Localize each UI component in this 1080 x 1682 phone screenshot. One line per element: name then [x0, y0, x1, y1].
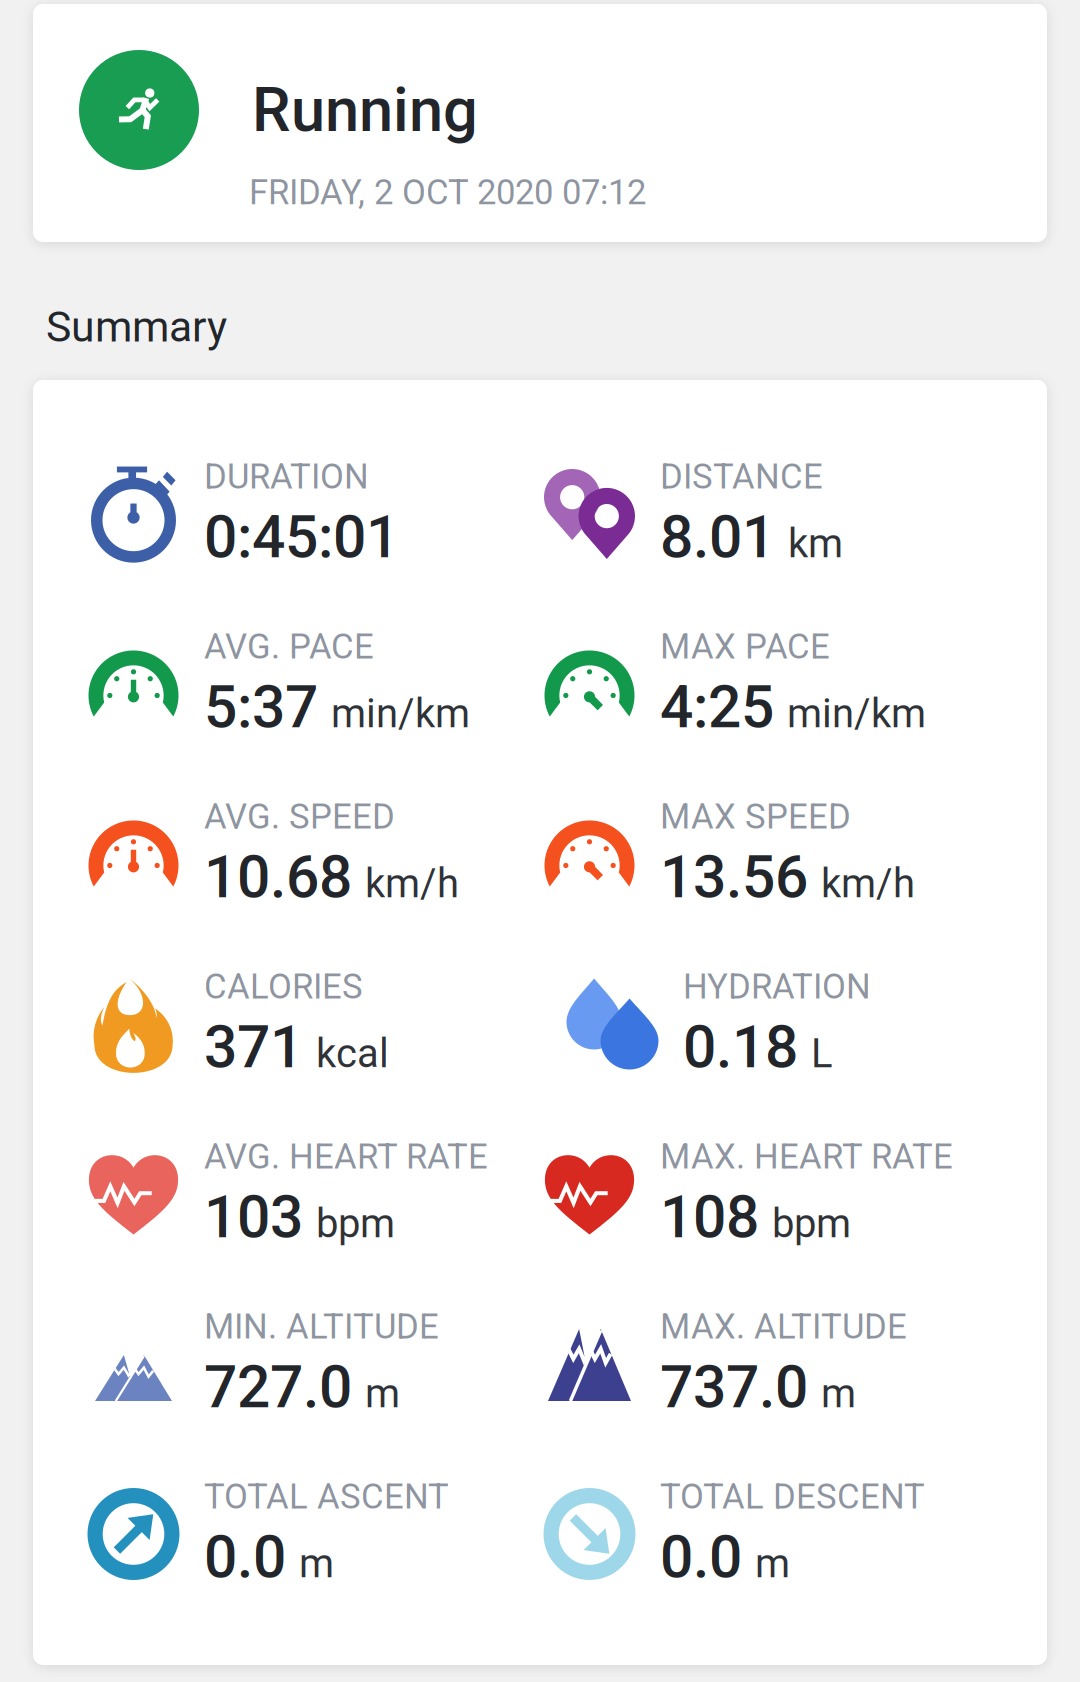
staticText: 5:37	[204, 673, 318, 742]
staticText: AVG. PACE	[204, 626, 374, 667]
staticText: 13.56	[660, 843, 808, 912]
staticText: 737.0	[660, 1353, 808, 1422]
staticText: AVG. SPEED	[204, 796, 395, 837]
staticText: TOTAL ASCENT	[204, 1476, 449, 1517]
staticText: 8.01	[660, 503, 775, 572]
staticText: km/h	[365, 860, 459, 907]
staticText: min/km	[787, 690, 926, 737]
staticText: 0.18	[683, 1013, 798, 1082]
staticText: bpm	[316, 1200, 395, 1247]
staticText: kcal	[316, 1030, 389, 1077]
staticText: 108	[660, 1183, 759, 1252]
staticText: m	[821, 1370, 856, 1417]
staticText: FRIDAY, 2 OCT 2020 07:12	[249, 172, 646, 213]
staticText: TOTAL DESCENT	[660, 1476, 925, 1517]
staticText: MAX PACE	[660, 626, 830, 667]
staticText: km/h	[821, 860, 915, 907]
staticText: m	[365, 1370, 400, 1417]
staticText: bpm	[772, 1200, 851, 1247]
staticText: DISTANCE	[660, 456, 823, 497]
staticText: 0.0	[660, 1523, 742, 1592]
staticText: MIN. ALTITUDE	[204, 1306, 439, 1347]
staticText: MAX. HEART RATE	[660, 1136, 953, 1177]
staticText: DURATION	[204, 456, 369, 497]
staticText: Running	[252, 74, 478, 146]
button[interactable]: Running	[33, 4, 1047, 242]
staticText: 0:45:01	[204, 503, 399, 572]
staticText: 10.68	[204, 843, 352, 912]
staticText: CALORIES	[204, 966, 363, 1007]
staticText: min/km	[331, 690, 470, 737]
staticText: km	[788, 520, 843, 567]
staticText: 727.0	[204, 1353, 352, 1422]
staticText: 4:25	[660, 673, 774, 742]
staticText: AVG. HEART RATE	[204, 1136, 488, 1177]
staticText: HYDRATION	[683, 966, 871, 1007]
staticText: Summary	[46, 302, 227, 352]
staticText: 371	[204, 1013, 303, 1082]
staticText: m	[755, 1540, 790, 1587]
staticText: 0.0	[204, 1523, 286, 1592]
staticText: 103	[204, 1183, 303, 1252]
staticText: L	[811, 1030, 833, 1077]
staticText: MAX SPEED	[660, 796, 851, 837]
staticText: MAX. ALTITUDE	[660, 1306, 907, 1347]
staticText: m	[299, 1540, 334, 1587]
